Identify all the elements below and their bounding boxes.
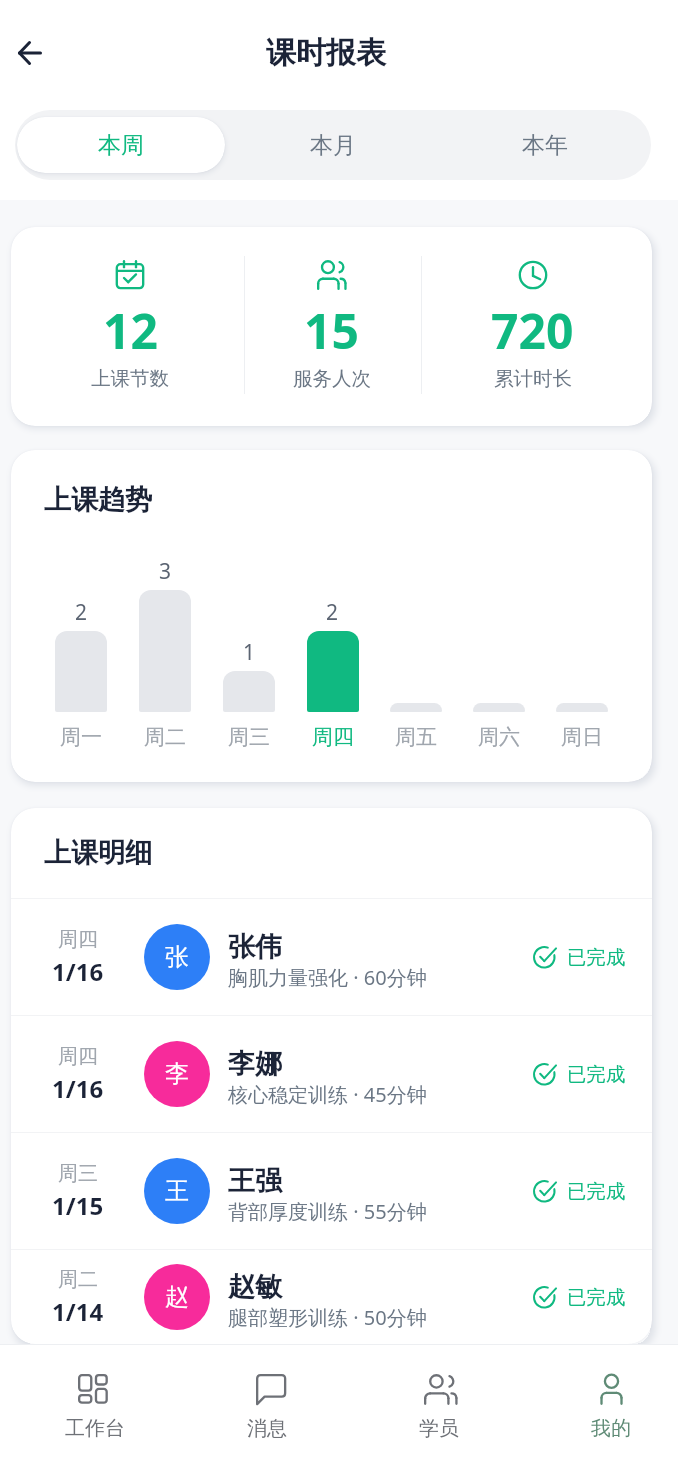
staticText: 周二 (144, 724, 186, 750)
staticText: 周一 (60, 724, 102, 750)
button[interactable]: 周三 (11, 1133, 652, 1249)
button[interactable]: 学员 (353, 1344, 525, 1460)
staticText: 720 (491, 298, 574, 363)
staticText: 我的 (591, 1416, 631, 1441)
staticText: 上课节数 (91, 366, 169, 391)
staticText: 课时报表 (0, 34, 652, 72)
button[interactable]: 本周 (17, 117, 225, 173)
button[interactable]: 我的 (525, 1344, 678, 1460)
staticText: 已完成 (567, 1179, 626, 1204)
button[interactable]: 周四 (11, 1016, 652, 1132)
staticText: 1/16 (52, 955, 104, 988)
staticText: 1/15 (52, 1189, 104, 1222)
staticText: 上课明细 (44, 836, 152, 870)
button[interactable]: 1 (207, 550, 291, 750)
staticText: 1/16 (52, 1072, 104, 1105)
staticText: 周六 (478, 724, 520, 750)
button[interactable]: 工作台 (9, 1344, 181, 1460)
staticText: 已完成 (567, 945, 626, 970)
staticText: 王 (165, 1176, 189, 1206)
staticText: 本年 (522, 131, 568, 160)
staticText: 赵 (165, 1282, 189, 1312)
staticText: 核心稳定训练 · 45分钟 (228, 1081, 427, 1108)
staticText: 2 (326, 598, 339, 627)
staticText: 张伟 (228, 930, 282, 964)
staticText: 1/14 (52, 1295, 104, 1328)
staticText: 周三 (228, 724, 270, 750)
staticText: 赵敏 (228, 1270, 282, 1304)
staticText: 2 (75, 598, 88, 627)
staticText: 李 (165, 1059, 189, 1089)
staticText: 本月 (310, 131, 356, 160)
staticText: 腿部塑形训练 · 50分钟 (228, 1304, 427, 1331)
staticText: 周五 (395, 724, 437, 750)
button[interactable]: 周六 (457, 550, 540, 750)
staticText: 15 (304, 298, 359, 363)
staticText: 周四 (58, 1044, 98, 1069)
staticText: 3 (159, 557, 172, 586)
button[interactable]: 本月 (229, 117, 437, 173)
staticText: 工作台 (65, 1416, 125, 1441)
staticText: 学员 (419, 1416, 459, 1441)
staticText: 服务人次 (293, 366, 371, 391)
button[interactable]: 2 (39, 550, 123, 750)
staticText: 周四 (58, 927, 98, 952)
staticText: 王强 (228, 1164, 282, 1198)
staticText: 12 (103, 298, 158, 363)
staticText: 已完成 (567, 1285, 626, 1310)
staticText: 1 (243, 638, 256, 667)
staticText: 上课趋势 (44, 483, 152, 517)
staticText: 张 (165, 942, 189, 972)
button[interactable]: 15 (231, 260, 432, 391)
button[interactable]: 周日 (540, 550, 623, 750)
button[interactable]: 3 (123, 550, 207, 750)
staticText: 消息 (247, 1416, 287, 1441)
staticText: 累计时长 (494, 366, 572, 391)
button[interactable]: 周四 (11, 899, 652, 1015)
staticText: 周四 (312, 724, 354, 750)
button[interactable]: 720 (432, 260, 633, 391)
staticText: 周日 (561, 724, 603, 750)
button[interactable]: 周五 (374, 550, 457, 750)
staticText: 周三 (58, 1161, 98, 1186)
staticText: 背部厚度训练 · 55分钟 (228, 1198, 427, 1225)
staticText: 本周 (98, 131, 144, 160)
button[interactable]: 周二 (11, 1250, 652, 1344)
staticText: 胸肌力量强化 · 60分钟 (228, 964, 427, 991)
staticText: 已完成 (567, 1062, 626, 1087)
button[interactable]: 消息 (181, 1344, 353, 1460)
button[interactable]: 12 (29, 260, 231, 391)
staticText: 周二 (58, 1267, 98, 1292)
staticText: 李娜 (228, 1047, 282, 1081)
button[interactable]: 本年 (441, 117, 649, 173)
button[interactable]: Back (2, 25, 58, 81)
button[interactable]: 2 (291, 550, 374, 750)
